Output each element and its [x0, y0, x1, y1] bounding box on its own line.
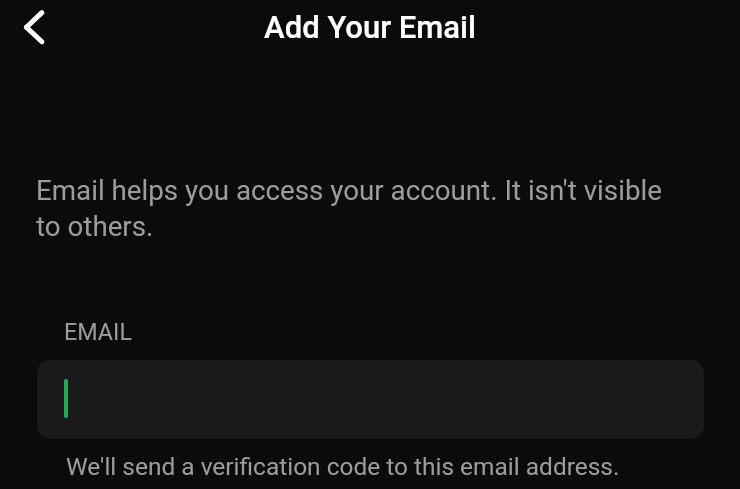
- staticText: EMAIL: [64, 318, 132, 345]
- staticText: Add Your Email: [264, 9, 476, 45]
- button[interactable]: Email address input field: [37, 360, 704, 439]
- staticText: Email helps you access your account. It …: [36, 174, 680, 243]
- staticText: We'll send a verification code to this e…: [66, 452, 620, 481]
- button[interactable]: Navigate back: [6, 0, 62, 56]
